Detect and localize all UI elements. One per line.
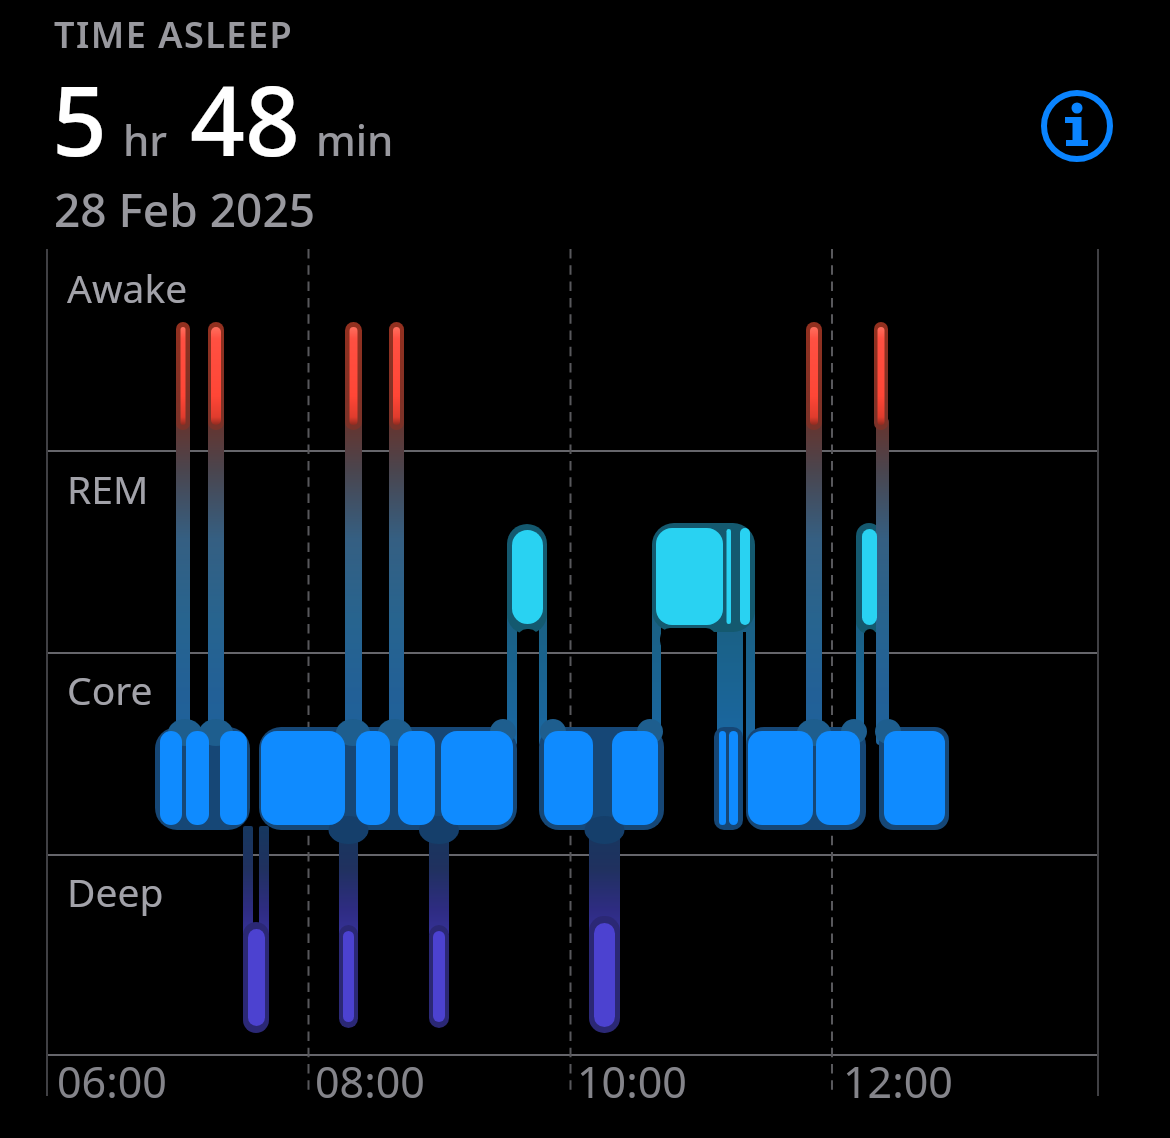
staticText: 28 Feb 2025 (54, 178, 316, 241)
button[interactable] (1038, 87, 1116, 165)
staticText: Core (67, 663, 153, 716)
staticText: 5 (52, 53, 107, 184)
staticText: min (316, 111, 394, 168)
staticText: 08:00 (315, 1052, 425, 1111)
staticText: REM (67, 462, 149, 515)
staticText: 10:00 (577, 1052, 687, 1111)
staticText: Deep (67, 865, 164, 918)
staticText: TIME ASLEEP (54, 10, 294, 59)
staticText: hr (123, 111, 168, 168)
staticText: 06:00 (57, 1052, 167, 1111)
staticText: Awake (67, 261, 188, 314)
staticText: 12:00 (843, 1052, 953, 1111)
staticText: 48 (190, 53, 300, 184)
